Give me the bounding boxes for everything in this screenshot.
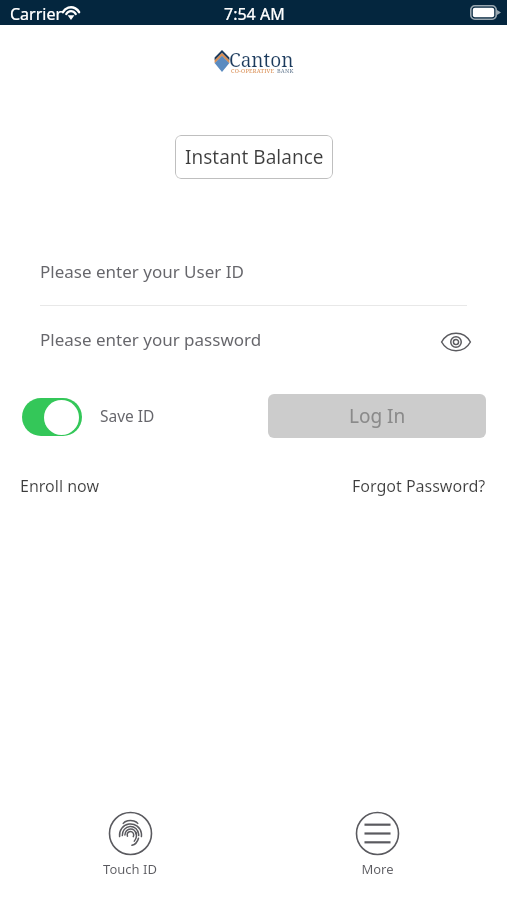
- button[interactable]: Please enter your User ID: [40, 246, 467, 296]
- staticText: Touch ID: [103, 860, 157, 878]
- staticText: Carrier: [10, 3, 63, 25]
- button[interactable]: Enroll now: [20, 470, 99, 502]
- staticText: BANK: [277, 67, 294, 75]
- staticText: 7:54 AM: [224, 3, 285, 25]
- staticText: Save ID: [100, 405, 155, 426]
- staticText: Forgot Password?: [352, 475, 486, 497]
- staticText: Please enter your User ID: [40, 260, 244, 283]
- button[interactable]: More: [317, 811, 437, 878]
- button[interactable]: Show password: [437, 323, 475, 361]
- button[interactable]: Log In: [268, 394, 486, 438]
- staticText: Instant Balance: [185, 144, 324, 170]
- staticText: Log In: [349, 403, 406, 429]
- staticText: Please enter your password: [40, 328, 262, 351]
- button[interactable]: Instant Balance: [175, 135, 333, 179]
- staticText: Enroll now: [20, 475, 99, 497]
- staticText: More: [361, 860, 394, 878]
- button[interactable]: Touch ID: [70, 811, 190, 878]
- staticText: Canton: [229, 47, 294, 73]
- button[interactable]: Please enter your password: [40, 315, 430, 363]
- button[interactable]: Forgot Password?: [352, 470, 486, 502]
- button[interactable]: Save ID: [22, 398, 156, 436]
- staticText: CO-OPERATIVE: [231, 67, 277, 75]
